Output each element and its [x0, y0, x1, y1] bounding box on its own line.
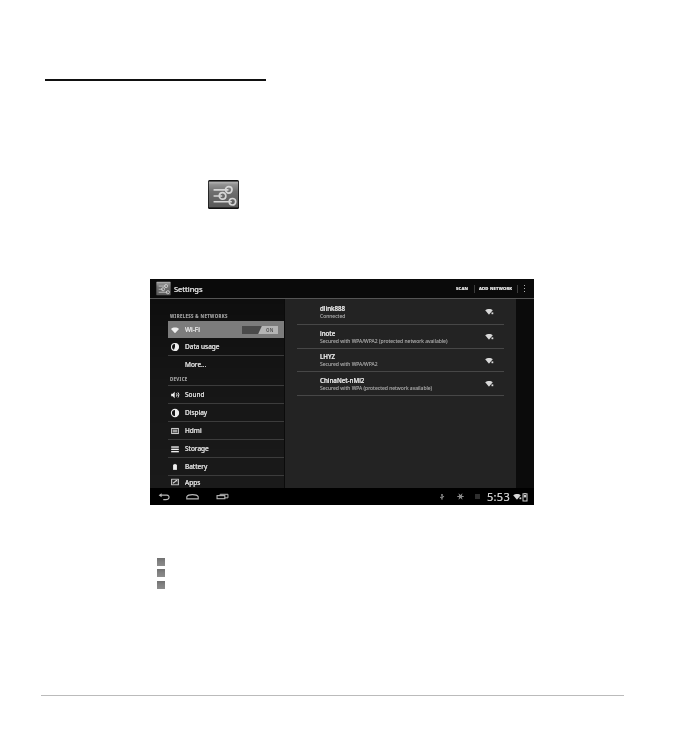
button[interactable]: LHYZ: [285, 349, 516, 371]
button[interactable]: Settings: [208, 180, 239, 209]
button[interactable]: ADD NETWORK: [475, 279, 517, 298]
button[interactable]: Apps: [150, 476, 284, 488]
staticText: WIRELESS & NETWORKS: [170, 313, 228, 319]
staticText: Secured with WPA/WPA2 (protected network…: [320, 338, 448, 345]
button[interactable]: Data usage: [150, 338, 284, 355]
staticText: More...: [185, 360, 207, 369]
button[interactable]: Back: [158, 491, 170, 502]
button[interactable]: Recents: [216, 491, 229, 502]
button[interactable]: Sound: [150, 386, 284, 403]
staticText: inote: [320, 329, 336, 337]
button[interactable]: Hdmi: [150, 422, 284, 439]
staticText: Hdmi: [185, 426, 202, 435]
button[interactable]: Settings: [156, 281, 171, 296]
button[interactable]: Home: [186, 491, 199, 502]
button[interactable]: inote: [285, 325, 516, 348]
button[interactable]: More...: [150, 356, 284, 373]
button[interactable]: ChinaNet-nMi2: [285, 372, 516, 395]
button[interactable]: Storage: [150, 440, 284, 457]
staticText: Settings: [174, 284, 203, 294]
staticText: Data usage: [185, 342, 220, 351]
staticText: ON: [266, 327, 274, 333]
button[interactable]: Display: [150, 404, 284, 421]
button[interactable]: Wi-Fi: [168, 321, 284, 338]
staticText: dlink888: [320, 304, 346, 312]
button[interactable]: More options: [518, 279, 531, 298]
staticText: LHYZ: [320, 352, 336, 360]
staticText: Battery: [185, 462, 208, 471]
staticText: Wi-Fi: [185, 325, 200, 334]
staticText: Storage: [185, 444, 209, 453]
button[interactable]: SCAN: [451, 279, 474, 298]
button[interactable]: dlink888: [285, 299, 516, 324]
staticText: SCAN: [456, 286, 469, 292]
staticText: Sound: [185, 390, 205, 399]
staticText: ADD NETWORK: [479, 286, 513, 292]
staticText: ChinaNet-nMi2: [320, 376, 365, 384]
staticText: Display: [185, 408, 208, 417]
staticText: Connected: [320, 313, 346, 320]
staticText: DEVICE: [170, 376, 188, 382]
button[interactable]: Battery: [150, 458, 284, 475]
button[interactable]: ON: [242, 326, 278, 334]
staticText: Secured with WPA/WPA2: [320, 361, 378, 368]
staticText: Apps: [185, 478, 201, 487]
staticText: Secured with WPA (protected network avai…: [320, 385, 433, 392]
staticText: 5:53: [487, 489, 511, 504]
